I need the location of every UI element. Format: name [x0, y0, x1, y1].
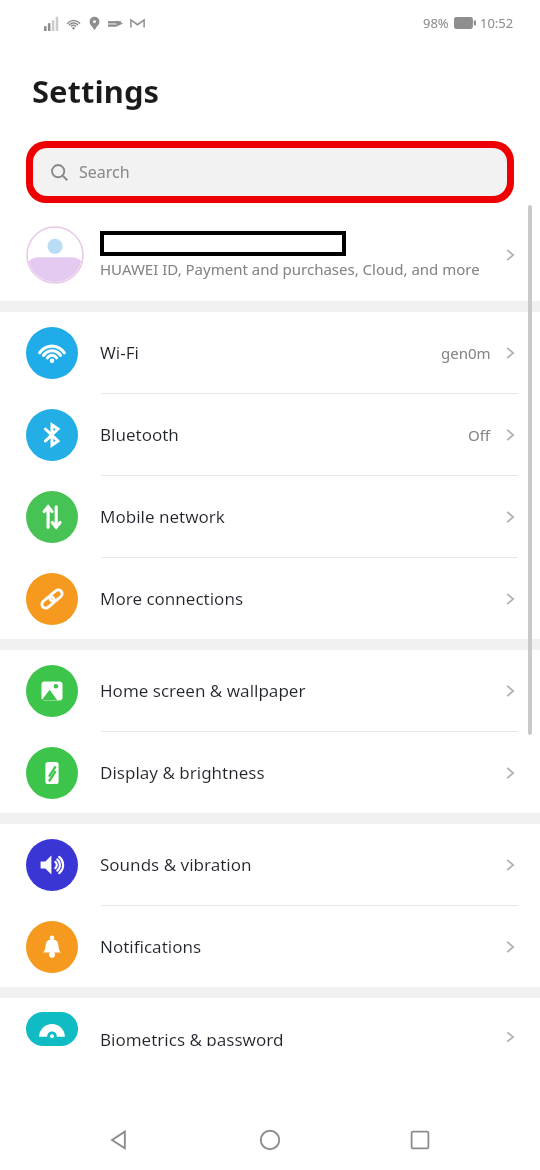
staticText: 98%	[423, 14, 449, 32]
staticText: Display & brightness	[100, 761, 265, 784]
staticText: Wi-Fi	[100, 341, 139, 364]
staticText: Bluetooth	[100, 423, 179, 446]
button[interactable]: Home	[240, 1110, 300, 1170]
button[interactable]: More connections	[0, 558, 540, 639]
staticText: Settings	[32, 70, 160, 112]
button[interactable]: Recents	[390, 1110, 450, 1170]
button[interactable]: Biometrics & password	[0, 998, 540, 1046]
staticText: Off	[468, 425, 491, 445]
staticText: More connections	[100, 587, 244, 610]
button[interactable]: Mobile network	[0, 476, 540, 557]
staticText: Sounds & vibration	[100, 853, 252, 876]
button[interactable]: Sounds & vibration	[0, 824, 540, 905]
button[interactable]: Back	[90, 1110, 150, 1170]
button[interactable]: Home screen & wallpaper	[0, 650, 540, 731]
button[interactable]: HUAWEI ID, Payment and purchases, Cloud,…	[0, 208, 540, 301]
button[interactable]: Notifications	[0, 906, 540, 987]
button[interactable]: Display & brightness	[0, 732, 540, 813]
staticText: HUAWEI ID, Payment and purchases, Cloud,…	[100, 259, 480, 279]
button[interactable]: Wi-Fi	[0, 312, 540, 393]
staticText: Search	[79, 161, 130, 183]
button[interactable]: Bluetooth	[0, 394, 540, 475]
staticText: 10:52	[480, 14, 514, 32]
staticText: Notifications	[100, 935, 202, 958]
staticText: Home screen & wallpaper	[100, 679, 306, 702]
staticText: Biometrics & password	[100, 1028, 284, 1046]
staticText: gen0m	[441, 343, 491, 363]
staticText: Mobile network	[100, 505, 225, 528]
button[interactable]: Search	[33, 148, 507, 196]
